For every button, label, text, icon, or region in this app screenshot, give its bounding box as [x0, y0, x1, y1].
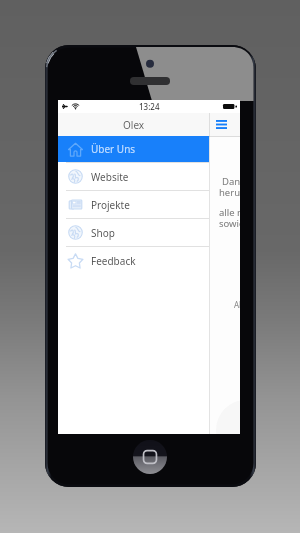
staticText: Projekte [91, 198, 130, 212]
button[interactable]: Projekte [58, 191, 209, 218]
staticText: Feedback [91, 254, 136, 268]
staticText: herunterladen [219, 186, 240, 199]
staticText: Olex [123, 118, 145, 132]
button[interactable]: Über Uns [58, 136, 209, 162]
staticText: 13:24 [139, 101, 160, 112]
button[interactable]: Website [58, 163, 209, 190]
staticText: Danke für Ihr [222, 175, 240, 188]
staticText: Website [91, 170, 129, 184]
button[interactable]: Open navigation menu [213, 118, 229, 131]
staticText: Shop [91, 226, 115, 240]
staticText: Über Uns [91, 142, 136, 156]
button[interactable]: Shop [58, 219, 209, 246]
button[interactable]: Feedback [58, 247, 209, 274]
staticText: Aktuelles [234, 299, 240, 310]
staticText: sowie weitere [219, 217, 240, 230]
staticText: alle neuigkeiten [219, 206, 240, 219]
